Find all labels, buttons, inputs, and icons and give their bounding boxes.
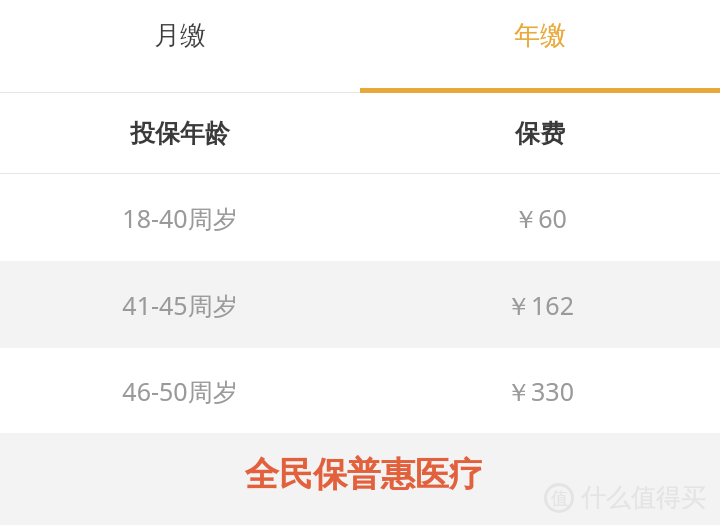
staticText: 什么值得买	[581, 482, 706, 513]
button[interactable]: 月缴	[0, 0, 360, 93]
staticText: 41-45周岁	[122, 288, 238, 322]
staticText: 月缴	[154, 19, 206, 52]
staticText: 年缴	[514, 19, 566, 52]
staticText: ￥162	[506, 288, 574, 322]
staticText: ￥60	[513, 201, 567, 235]
staticText: 46-50周岁	[122, 374, 238, 408]
staticText: 投保年龄	[130, 118, 230, 149]
staticText: 18-40周岁	[122, 201, 238, 235]
button[interactable]: 年缴	[360, 0, 720, 93]
staticText: 全民保普惠医疗	[245, 453, 483, 496]
button[interactable]: 18-40周岁	[0, 174, 720, 261]
button[interactable]: 41-45周岁	[0, 261, 720, 348]
button[interactable]: 46-50周岁	[0, 348, 720, 433]
staticText: 值	[551, 488, 568, 509]
staticText: ￥330	[506, 374, 574, 408]
staticText: 保费	[515, 118, 565, 149]
